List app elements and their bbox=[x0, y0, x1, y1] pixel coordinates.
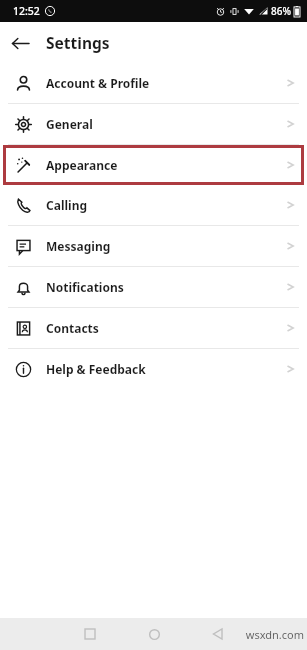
staticText: Settings bbox=[46, 32, 110, 53]
button[interactable]: Recents bbox=[75, 619, 105, 649]
button[interactable]: Back bbox=[0, 23, 40, 63]
button[interactable]: Appearance bbox=[0, 145, 307, 185]
staticText: Messaging bbox=[46, 238, 111, 254]
button[interactable]: Home bbox=[139, 619, 169, 649]
button[interactable]: Notifications bbox=[0, 267, 307, 307]
button[interactable]: Contacts bbox=[0, 308, 307, 348]
staticText: 86% bbox=[271, 4, 291, 18]
staticText: General bbox=[46, 116, 93, 132]
button[interactable]: General bbox=[0, 104, 307, 144]
staticText: Calling bbox=[46, 197, 88, 213]
staticText: wsxdn.com bbox=[245, 627, 304, 642]
button[interactable]: Calling bbox=[0, 185, 307, 225]
staticText: Notifications bbox=[46, 279, 124, 295]
staticText: Appearance bbox=[46, 157, 118, 173]
button[interactable]: Account & Profile bbox=[0, 63, 307, 103]
staticText: Help & Feedback bbox=[46, 361, 146, 377]
button[interactable]: Help & Feedback bbox=[0, 349, 307, 389]
staticText: Account & Profile bbox=[46, 75, 150, 91]
staticText: Contacts bbox=[46, 320, 99, 336]
staticText: 12:52 bbox=[13, 4, 40, 18]
button[interactable]: Messaging bbox=[0, 226, 307, 266]
button[interactable]: Back bbox=[203, 619, 233, 649]
